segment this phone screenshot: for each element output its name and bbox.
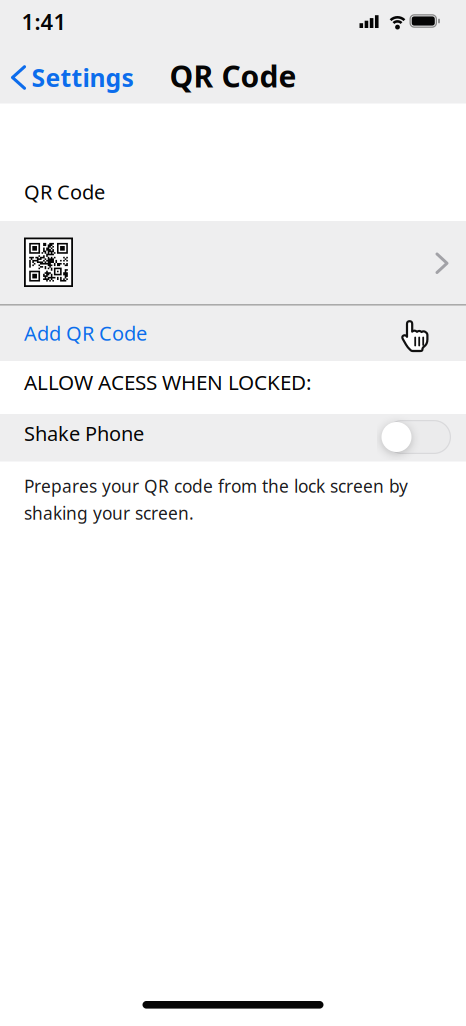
button[interactable]: Add QR Code [0,306,466,361]
staticText: Prepares your QR code from the lock scre… [24,474,408,524]
staticText: 1:41 [21,6,66,36]
staticText: Shake Phone [24,420,144,447]
button[interactable]: QR Code [0,221,466,304]
button[interactable]: Settings [0,58,133,96]
staticText: ALLOW ACESS WHEN LOCKED: [24,368,312,396]
button[interactable]: Shake Phone [0,414,466,461]
staticText: QR Code [169,55,296,96]
staticText: Settings [31,61,133,94]
staticText: Add QR Code [24,320,147,346]
staticText: QR Code [24,178,105,205]
